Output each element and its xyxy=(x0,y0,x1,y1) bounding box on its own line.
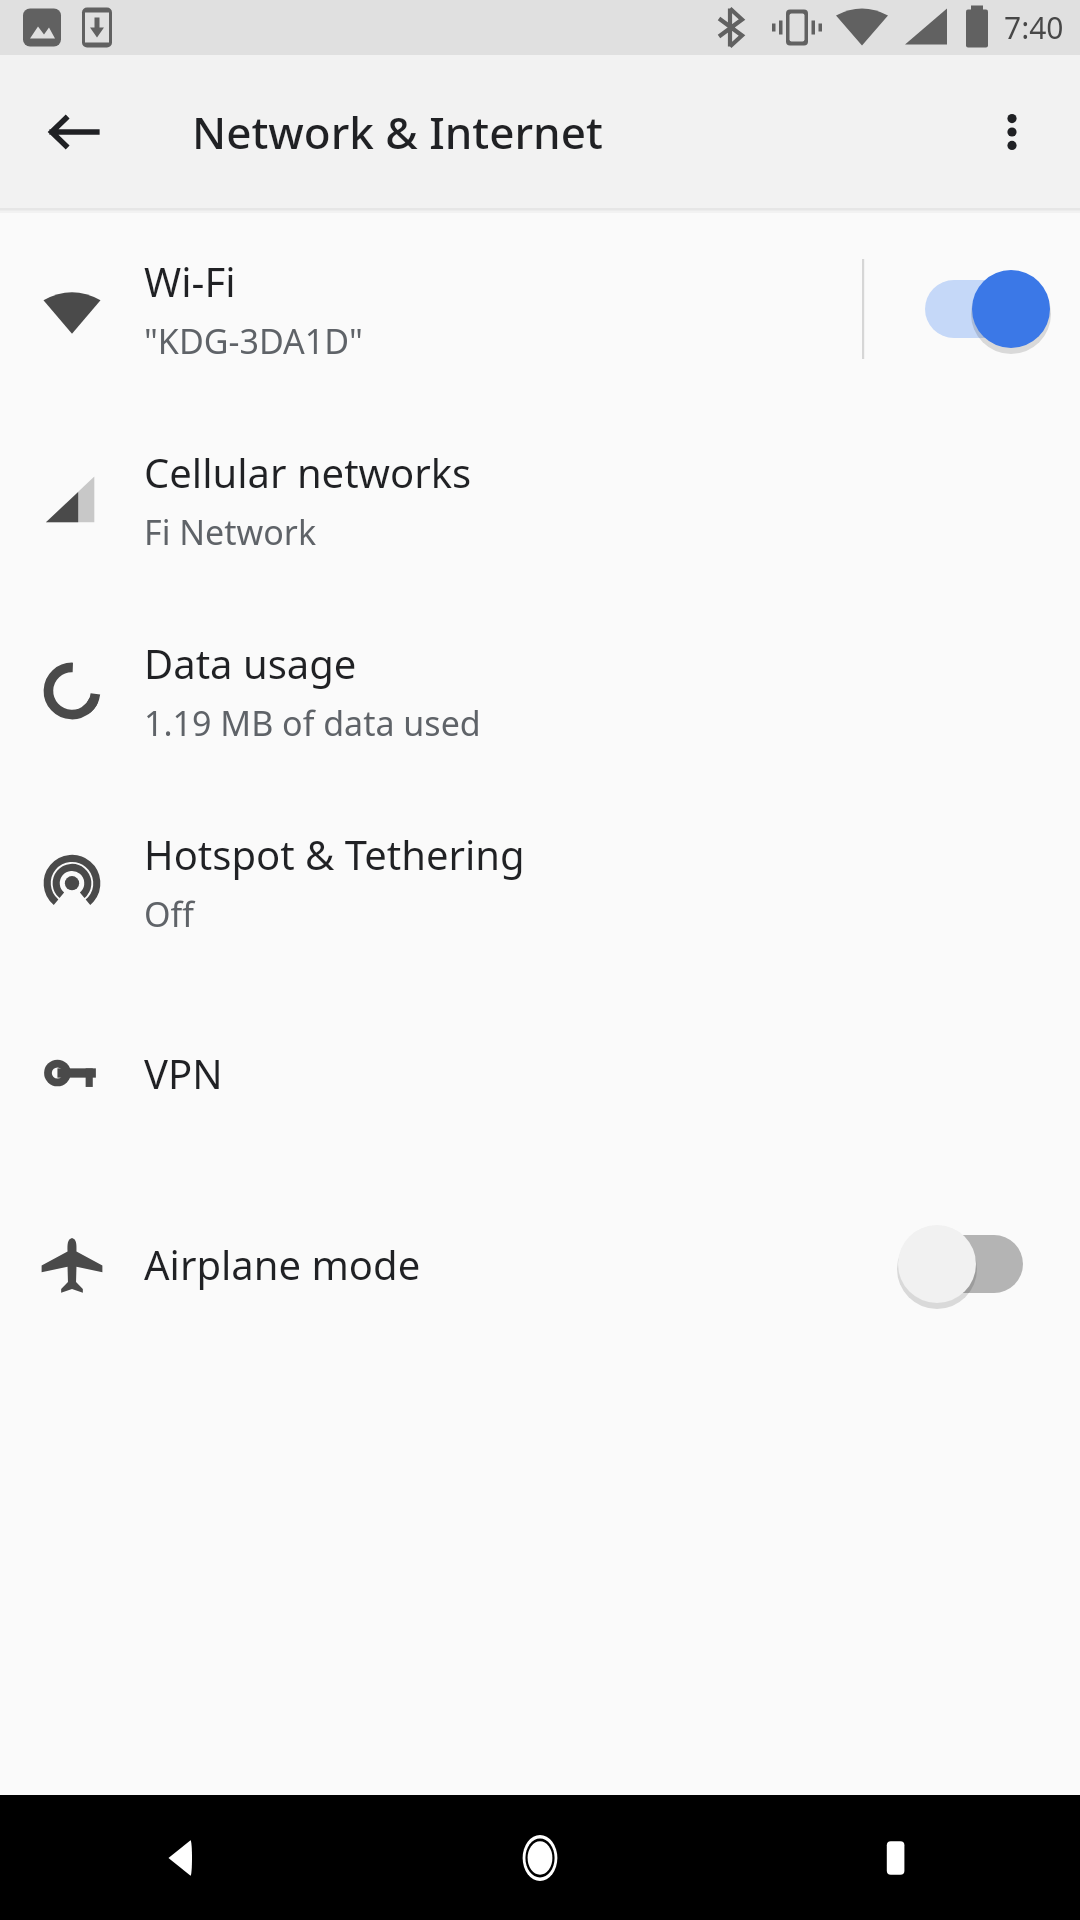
staticText: Network & Internet xyxy=(192,102,603,162)
button[interactable]: Hotspot & Tethering xyxy=(0,786,1080,977)
button[interactable]: VPN xyxy=(0,977,1080,1168)
staticText: Data usage xyxy=(144,636,357,690)
button[interactable]: Cellular networks xyxy=(0,404,1080,595)
button[interactable]: Home xyxy=(360,1795,720,1920)
button[interactable]: Airplane mode xyxy=(0,1168,1080,1359)
button[interactable]: Recent apps xyxy=(720,1795,1080,1920)
button[interactable]: Wi-Fi xyxy=(0,213,1080,404)
button[interactable]: Back xyxy=(0,1795,360,1920)
staticText: Hotspot & Tethering xyxy=(144,827,525,881)
staticText: Wi-Fi xyxy=(144,254,236,308)
staticText: "KDG-3DA1D" xyxy=(144,318,363,364)
staticText: Airplane mode xyxy=(144,1237,421,1291)
button[interactable]: Wi-Fi on xyxy=(865,213,1080,404)
button[interactable]: Data usage xyxy=(0,595,1080,786)
staticText: Off xyxy=(144,891,194,937)
staticText: 1.19 MB of data used xyxy=(144,700,481,746)
staticText: VPN xyxy=(144,1046,223,1100)
staticText: Cellular networks xyxy=(144,445,472,499)
staticText: 7:40 xyxy=(1004,7,1064,48)
button[interactable]: More options xyxy=(964,84,1060,180)
button[interactable]: Airplane mode off xyxy=(865,1168,1080,1359)
staticText: Fi Network xyxy=(144,509,317,555)
button[interactable]: Back xyxy=(26,84,122,180)
